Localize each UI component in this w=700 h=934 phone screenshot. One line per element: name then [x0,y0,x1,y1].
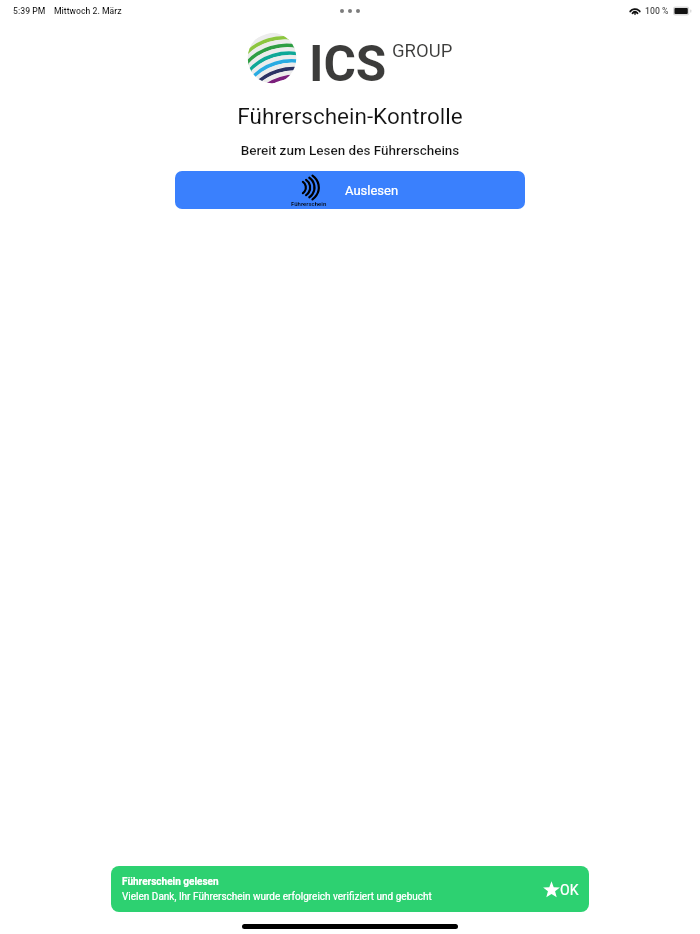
staticText: Bereit zum Lesen des Führerscheins [0,142,700,158]
button[interactable]: Führerschein gelesen [111,866,589,912]
button[interactable]: Führerschein [175,171,525,209]
button[interactable]: OK [541,877,581,902]
staticText: 100 % [645,6,669,16]
staticText: 5:39 PM [13,6,46,16]
staticText: ICS [309,35,387,93]
staticText: Vielen Dank, Ihr Führerschein wurde erfo… [122,891,432,903]
staticText: Führerschein-Kontrolle [0,103,700,129]
staticText: Auslesen [345,183,399,198]
staticText: OK [560,882,579,898]
staticText: Führerschein [291,200,327,207]
staticText: GROUP [392,40,453,62]
staticText: Mittwoch 2. März [54,6,122,16]
staticText: Führerschein gelesen [122,876,219,888]
